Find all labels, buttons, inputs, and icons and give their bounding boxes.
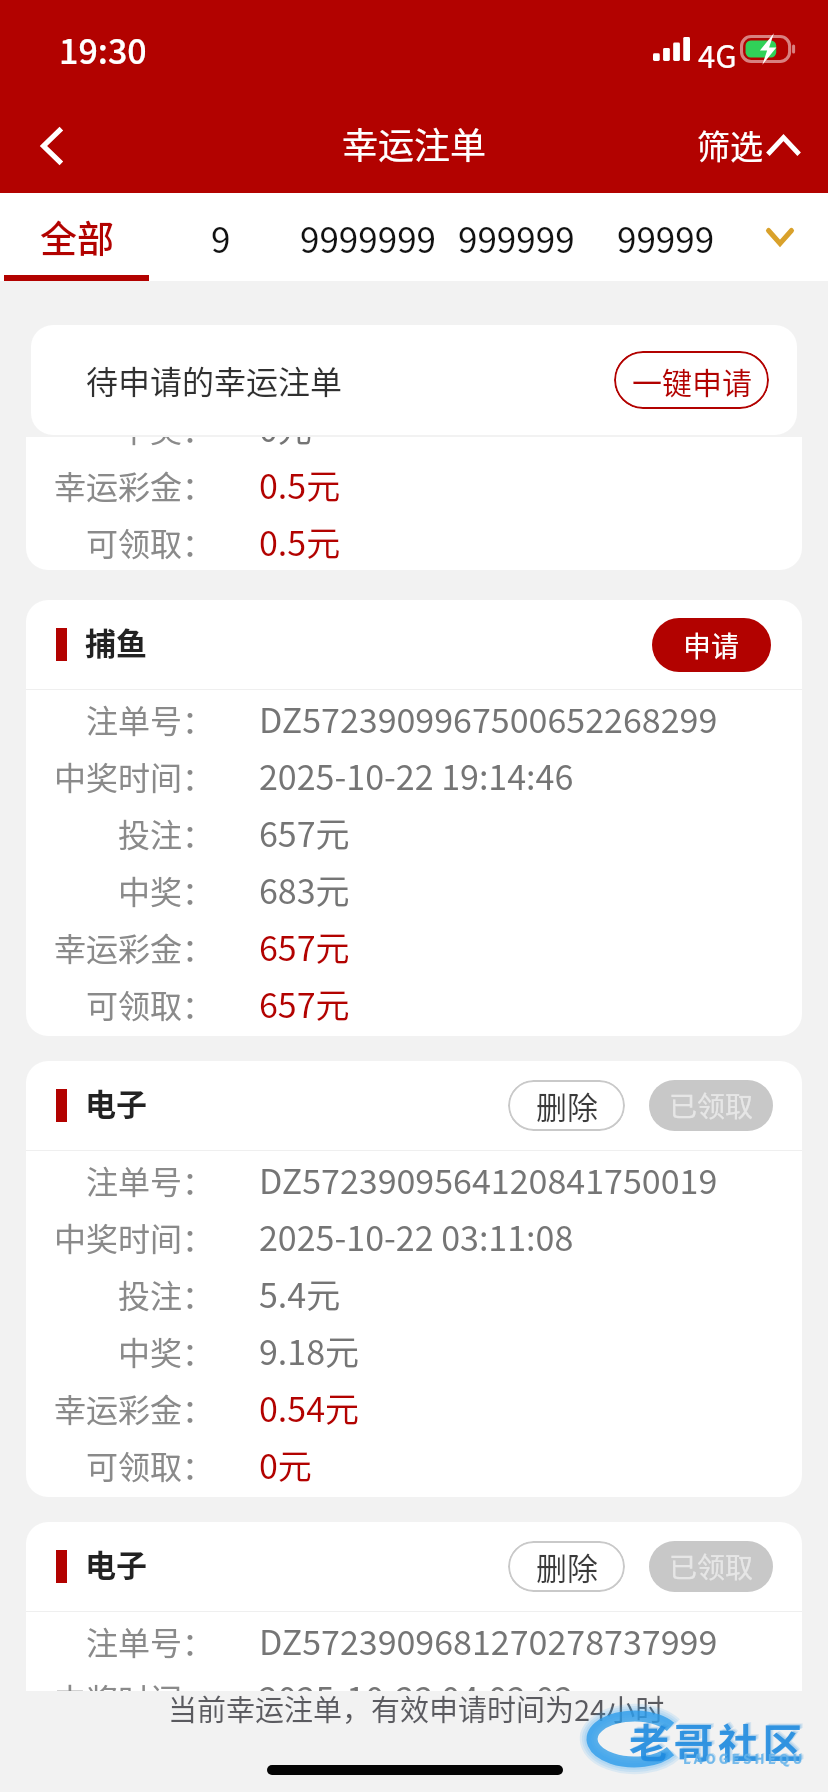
staticText: LAOGESHEQU	[683, 1749, 806, 1768]
staticText: 2025-10-22 19:14:46	[259, 751, 574, 800]
button[interactable]: 删除	[508, 1080, 625, 1131]
staticText: 2025-10-22 04:02:02	[259, 1673, 574, 1722]
staticText: 1元	[259, 1730, 312, 1779]
staticText: 9.18元	[259, 1326, 360, 1375]
staticText: 中奖时间：	[54, 1214, 215, 1260]
staticText: 657元	[259, 808, 350, 857]
staticText: 0.54元	[259, 1383, 360, 1432]
button[interactable]: 99999	[601, 193, 731, 281]
staticText: 捕鱼	[85, 619, 147, 664]
button[interactable]: 删除	[508, 1541, 625, 1592]
staticText: 683元	[259, 865, 350, 914]
staticText: 老哥社区	[630, 1711, 808, 1769]
staticText: 老哥社区	[632, 1710, 810, 1768]
staticText: 可领取：	[86, 519, 215, 565]
staticText: 待申请的幸运注单	[86, 357, 343, 403]
staticText: 中奖：	[118, 867, 215, 913]
button[interactable]: 9999999	[293, 193, 443, 281]
staticText: 幸运彩金：	[54, 462, 215, 508]
staticText: 删除	[536, 1083, 598, 1128]
button[interactable]: 9	[161, 193, 281, 281]
button[interactable]: 申请	[652, 618, 771, 672]
staticText: 中奖：	[118, 1328, 215, 1374]
staticText: 投注：	[118, 1271, 215, 1317]
staticText: 注单号：	[86, 1618, 215, 1664]
staticText: 注单号：	[86, 1157, 215, 1203]
staticText: 筛选	[697, 121, 763, 169]
staticText: 4G	[698, 32, 737, 77]
staticText: 老哥社区	[631, 1711, 809, 1769]
button[interactable]: 筛选	[697, 96, 799, 193]
staticText: DZ5723909681270278737999	[259, 1616, 718, 1665]
staticText: 9999999	[300, 212, 436, 263]
button[interactable]: 全部	[4, 193, 149, 281]
staticText: 幸运彩金：	[54, 924, 215, 970]
staticText: 已领取	[669, 1085, 754, 1126]
staticText: 全部	[40, 210, 114, 264]
button[interactable]: Expand filters	[750, 193, 810, 281]
staticText: 5.4元	[259, 1269, 341, 1318]
staticText: 19:30	[59, 25, 147, 74]
staticText: 可领取：	[86, 981, 215, 1027]
staticText: 申请	[683, 625, 740, 666]
staticText: 2025-10-22 03:11:08	[259, 1212, 574, 1261]
staticText: 0元	[259, 437, 312, 452]
staticText: 注单号：	[86, 696, 215, 742]
staticText: DZ5723909967500652268299	[259, 694, 718, 743]
staticText: 657元	[259, 979, 350, 1028]
staticText: 幸运彩金：	[54, 1385, 215, 1431]
staticText: DZ5723909564120841750019	[259, 1155, 718, 1204]
staticText: 中奖：	[118, 437, 215, 451]
staticText: 当前幸运注单，有效申请时间为24小时	[168, 1687, 665, 1729]
staticText: 999999	[458, 212, 575, 263]
button[interactable]: 已领取	[649, 1080, 773, 1131]
staticText: 一键申请	[632, 359, 752, 402]
staticText: LAOGESHEQU	[684, 1748, 807, 1767]
staticText: 电子	[85, 1080, 147, 1125]
staticText: 657元	[259, 922, 350, 971]
staticText: 投注：	[118, 810, 215, 856]
staticText: 99999	[617, 212, 715, 263]
staticText: 幸运注单	[342, 117, 487, 169]
staticText: 可领取：	[86, 1442, 215, 1488]
staticText: 0.5元	[259, 460, 341, 509]
button[interactable]: Back	[0, 96, 100, 193]
staticText: 老哥社区	[629, 1712, 807, 1770]
button[interactable]: 一键申请	[614, 351, 769, 409]
staticText: 已领取	[669, 1546, 754, 1587]
button[interactable]: 999999	[446, 193, 586, 281]
staticText: 0.5元	[259, 517, 341, 566]
staticText: 9	[211, 212, 231, 263]
staticText: 中奖时间：	[54, 1675, 215, 1721]
staticText: 中奖时间：	[54, 753, 215, 799]
staticText: 删除	[536, 1544, 598, 1589]
staticText: 0元	[259, 1440, 312, 1489]
staticText: 电子	[85, 1541, 147, 1586]
button[interactable]: 已领取	[649, 1541, 773, 1592]
staticText: LAOGESHEQU	[684, 1748, 807, 1767]
